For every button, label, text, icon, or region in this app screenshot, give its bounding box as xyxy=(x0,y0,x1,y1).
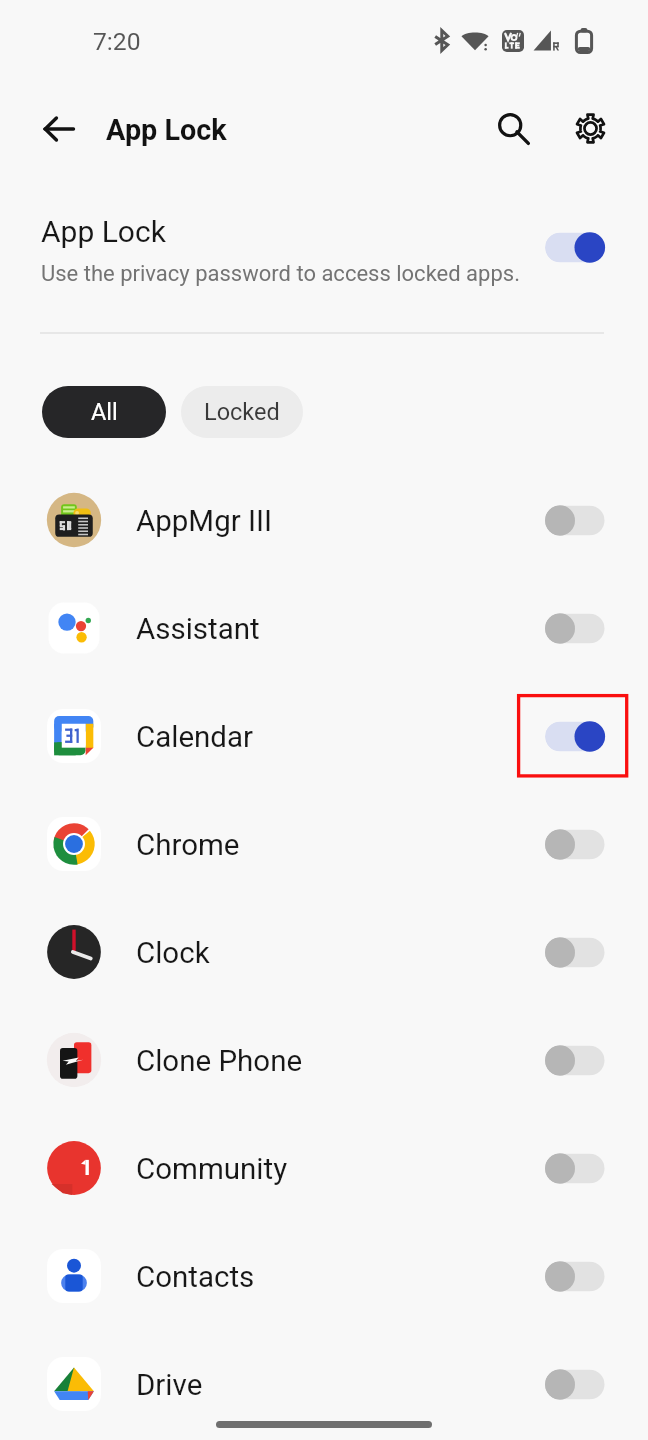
staticText: Use the privacy password to access locke… xyxy=(41,261,520,287)
button[interactable]: App Lock xyxy=(0,196,648,306)
staticText: App Lock xyxy=(41,214,166,249)
button[interactable]: Calendar, on xyxy=(545,721,607,752)
staticText: Clock xyxy=(136,936,210,971)
button[interactable]: Clock, off xyxy=(545,937,607,968)
button[interactable]: Community xyxy=(0,1114,648,1222)
staticText: Locked xyxy=(204,398,280,426)
button[interactable]: App Lock, on xyxy=(545,232,607,263)
button[interactable]: AppMgr III xyxy=(0,466,648,574)
button[interactable]: Clock xyxy=(0,898,648,1006)
staticText: Calendar xyxy=(136,720,254,755)
staticText: Chrome xyxy=(136,828,240,863)
staticText: Clone Phone xyxy=(136,1044,303,1079)
staticText: App Lock xyxy=(106,113,227,147)
staticText: All xyxy=(91,398,118,426)
button[interactable]: Assistant xyxy=(0,574,648,682)
button[interactable]: Clone Phone, off xyxy=(545,1045,607,1076)
staticText: Drive xyxy=(136,1368,203,1403)
button[interactable]: Drive xyxy=(0,1330,648,1438)
button[interactable]: Contacts xyxy=(0,1222,648,1330)
button[interactable]: Community, off xyxy=(545,1153,607,1184)
button[interactable]: Drive, off xyxy=(545,1369,607,1400)
button[interactable]: Contacts, off xyxy=(545,1261,607,1292)
button[interactable]: All xyxy=(42,386,166,438)
button[interactable]: Search xyxy=(483,98,543,158)
button[interactable]: Assistant, off xyxy=(545,613,607,644)
staticText: 7:20 xyxy=(93,27,141,56)
staticText: Assistant xyxy=(136,612,260,647)
button[interactable]: Calendar xyxy=(0,682,648,790)
staticText: Community xyxy=(136,1152,288,1187)
button[interactable]: Chrome, off xyxy=(545,829,607,860)
button[interactable]: AppMgr III, off xyxy=(545,505,607,536)
button[interactable]: Settings xyxy=(560,98,620,158)
button[interactable]: Locked xyxy=(181,386,303,438)
staticText: AppMgr III xyxy=(136,504,273,539)
staticText: Contacts xyxy=(136,1260,255,1295)
button[interactable]: Chrome xyxy=(0,790,648,898)
button[interactable]: Clone Phone xyxy=(0,1006,648,1114)
button[interactable]: Back xyxy=(29,99,89,159)
